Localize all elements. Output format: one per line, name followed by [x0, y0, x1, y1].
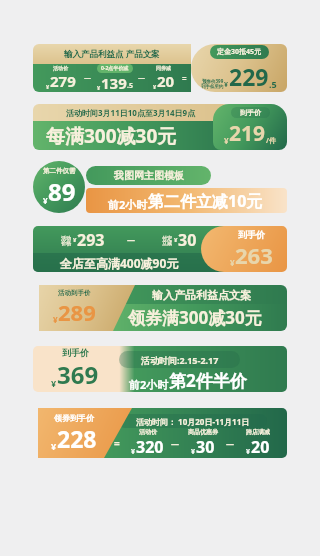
staticText: 领券满300减30元 — [128, 306, 262, 329]
staticText: 跨店满减 — [246, 428, 270, 436]
button[interactable]: 到手价 — [33, 346, 287, 392]
staticText: 89 — [48, 175, 76, 208]
staticText: .5 — [269, 78, 277, 90]
staticText: 293 — [77, 229, 105, 251]
button[interactable]: 活动时间3月11日10点至3月14日9点 — [33, 104, 287, 150]
staticText: /件 — [266, 136, 276, 146]
button[interactable]: 我图网主图模板 — [33, 161, 287, 213]
staticText: — — [226, 438, 234, 449]
staticText: .5 — [127, 81, 133, 91]
staticText: — — [138, 73, 145, 83]
staticText: ¥ — [246, 447, 251, 457]
staticText: 活动价 — [139, 428, 157, 436]
staticText: 0-2点半价减 — [101, 65, 129, 72]
button[interactable]: 活动 价格 — [33, 226, 287, 272]
staticText: ¥ — [131, 447, 136, 457]
staticText: = — [182, 73, 187, 84]
staticText: 前2小时 — [108, 197, 148, 212]
staticText: = — [114, 436, 120, 450]
staticText: — — [127, 234, 135, 245]
staticText: 全店至高满400减90元 — [60, 255, 179, 271]
staticText: 320 — [136, 436, 164, 458]
staticText: 领券到手价 — [54, 413, 94, 423]
staticText: 付定 立减 — [162, 235, 172, 246]
staticText: ¥ — [43, 195, 48, 206]
staticText: 商品优惠券 — [188, 428, 218, 436]
staticText: ¥ — [73, 236, 77, 244]
staticText: 到手低至约 — [201, 84, 224, 90]
staticText: 139 — [101, 73, 127, 92]
staticText: ¥ — [230, 257, 235, 268]
staticText: — — [84, 73, 91, 83]
staticText: 第2件半价 — [169, 369, 247, 392]
staticText: 229 — [229, 61, 269, 92]
staticText: 20 — [251, 436, 270, 458]
button[interactable]: 输入产品利益点文案 — [33, 285, 287, 331]
staticText: ¥ — [153, 83, 157, 90]
staticText: ¥ — [191, 447, 196, 457]
staticText: 活动时间： 10月20日-11月11日 — [136, 416, 250, 427]
staticText: ¥ — [53, 314, 58, 325]
button[interactable]: 输入产品利益点 产品文案 — [33, 44, 287, 92]
staticText: 20 — [157, 71, 175, 91]
staticText: 到手价 — [240, 108, 261, 117]
button[interactable]: 活动时间： 10月20日-11月11日 — [33, 408, 287, 458]
staticText: ¥ — [174, 236, 178, 244]
staticText: 219 — [229, 119, 266, 148]
staticText: 第二件立减10元 — [148, 190, 263, 212]
staticText: 活动时间:2.15-2.17 — [141, 354, 219, 366]
staticText: 每满300减30元 — [46, 123, 177, 149]
staticText: 同券减 — [156, 65, 171, 71]
staticText: 到手价 — [62, 347, 89, 358]
staticText: 228 — [57, 423, 97, 454]
staticText: ¥ — [224, 135, 229, 146]
staticText: 289 — [58, 297, 96, 327]
staticText: 我图网主图模板 — [114, 169, 184, 182]
staticText: 30 — [196, 436, 215, 458]
staticText: 输入产品利益点 产品文案 — [64, 48, 160, 60]
staticText: 到手价 — [238, 229, 265, 240]
staticText: ¥ — [224, 80, 229, 90]
staticText: 活动时间3月11日10点至3月14日9点 — [66, 107, 196, 118]
staticText: 输入产品利益点文案 — [152, 288, 251, 302]
staticText: 第二件仅需 — [43, 167, 76, 175]
staticText: 279 — [50, 71, 76, 91]
staticText: ¥ — [51, 440, 57, 452]
staticText: 前2小时 — [129, 377, 169, 392]
staticText: ¥ — [51, 377, 57, 389]
staticText: 活动到手价 — [58, 289, 91, 297]
staticText: 369 — [57, 358, 99, 391]
staticText: 30 — [178, 229, 197, 251]
staticText: 定金30抵45元 — [217, 47, 262, 57]
staticText: 预售价399 — [202, 78, 224, 84]
staticText: 活动 价格 — [61, 235, 71, 246]
staticText: 263 — [235, 240, 273, 270]
staticText: ¥ — [97, 84, 101, 91]
staticText: ¥ — [46, 83, 50, 90]
staticText: — — [171, 438, 179, 449]
staticText: 活动价 — [53, 65, 68, 71]
